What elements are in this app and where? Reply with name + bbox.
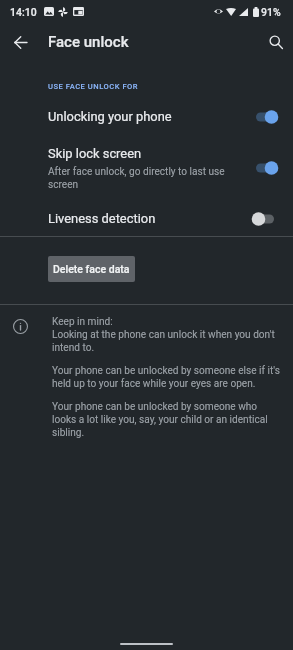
staticText: Unlocking your phone (48, 109, 172, 124)
button[interactable]: Delete face data (48, 256, 135, 282)
staticText: After face unlock, go directly to last u… (48, 166, 233, 191)
staticText: Your phone can be unlocked by someone wh… (52, 401, 282, 439)
button[interactable]: Unlocking your phone (0, 102, 293, 131)
staticText: 91% (261, 6, 281, 18)
staticText: Skip lock screen (48, 146, 142, 161)
button[interactable]: Back (0, 23, 38, 61)
staticText: Keep in mind: Looking at the phone can u… (52, 316, 282, 354)
button[interactable]: Search (255, 23, 293, 61)
staticText: Your phone can be unlocked by someone el… (52, 365, 282, 390)
button[interactable]: Skip lock screen (0, 139, 293, 197)
staticText: Liveness detection (48, 211, 156, 226)
staticText: 14:10 (10, 6, 37, 18)
staticText: USE FACE UNLOCK FOR (48, 82, 139, 91)
staticText: Delete face data (53, 263, 130, 275)
staticText: Face unlock (48, 33, 129, 51)
button[interactable]: Liveness detection (0, 204, 293, 233)
